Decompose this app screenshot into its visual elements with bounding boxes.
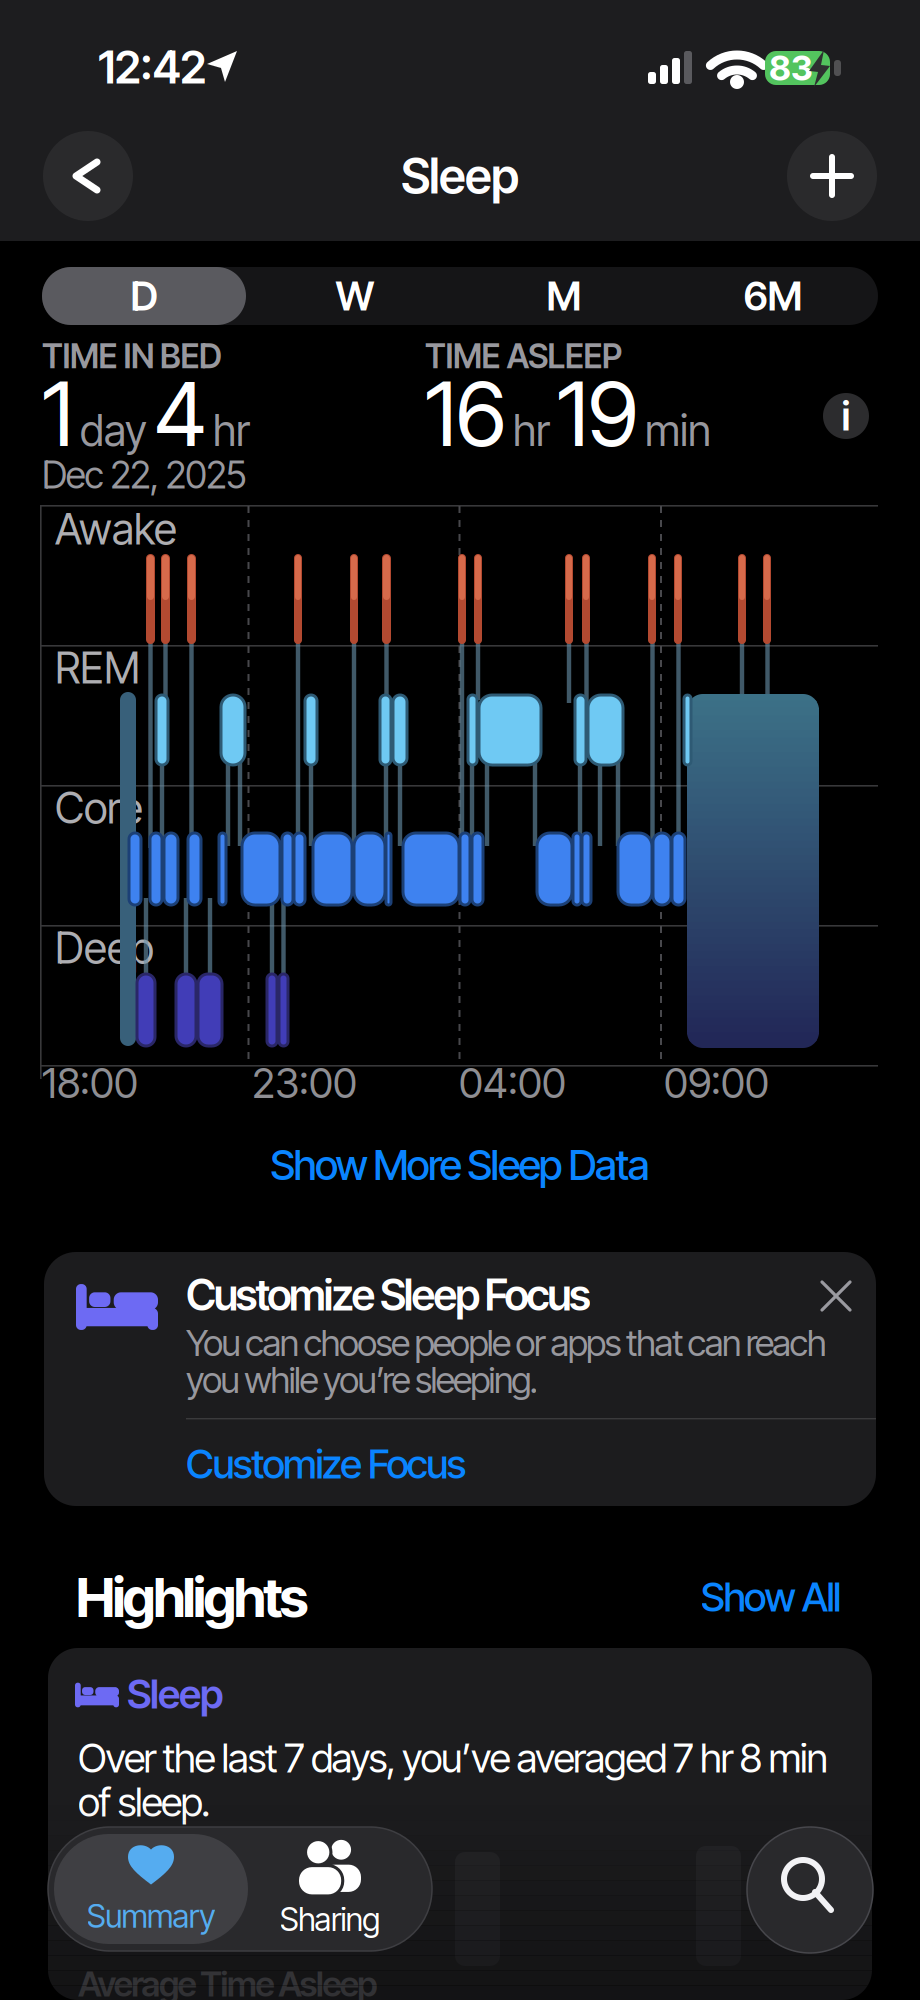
staticText: 12:42: [98, 40, 206, 94]
button[interactable]: Show More Sleep Data: [270, 1141, 650, 1189]
staticText: you while you’re sleeping.: [186, 1359, 538, 1401]
button[interactable]: Back: [43, 131, 133, 221]
staticText: Sharing: [280, 1900, 380, 1938]
staticText: hr: [513, 405, 550, 456]
staticText: Customize Sleep Focus: [186, 1270, 591, 1320]
staticText: Highlights: [76, 1565, 309, 1629]
staticText: Deep: [55, 923, 154, 973]
button[interactable]: W: [255, 267, 455, 325]
staticText: 6M: [743, 272, 802, 320]
button[interactable]: D: [42, 267, 246, 325]
staticText: M: [546, 272, 581, 320]
staticText: W: [335, 272, 374, 320]
button[interactable]: Dismiss: [816, 1276, 856, 1316]
button[interactable]: M: [464, 267, 664, 325]
staticText: 09:00: [664, 1059, 769, 1107]
staticText: Show All: [701, 1573, 841, 1621]
staticText: i: [841, 392, 850, 440]
staticText: day: [80, 405, 147, 456]
staticText: 16: [425, 362, 506, 466]
button[interactable]: Show All: [0, 0, 920, 2000]
staticText: 83: [769, 48, 813, 88]
button[interactable]: Add Data: [787, 131, 877, 221]
staticText: Sleep: [401, 148, 519, 204]
staticText: of sleep.: [78, 1778, 210, 1826]
button[interactable]: Info: [823, 392, 869, 440]
staticText: D: [130, 272, 157, 320]
staticText: 1: [42, 362, 73, 466]
staticText: Core: [55, 783, 143, 833]
staticText: Customize Focus: [186, 1440, 467, 1488]
staticText: You can choose people or apps that can r…: [186, 1322, 827, 1364]
staticText: 18:00: [42, 1059, 138, 1107]
staticText: Dec 22, 2025: [42, 453, 247, 497]
button[interactable]: Search: [747, 1827, 873, 1953]
staticText: REM: [55, 643, 140, 693]
staticText: 4: [154, 362, 206, 466]
button[interactable]: 6M: [673, 267, 873, 325]
staticText: 19: [557, 362, 638, 466]
staticText: TIME IN BED: [42, 336, 222, 376]
button[interactable]: Sharing: [245, 1834, 415, 1944]
staticText: Awake: [55, 504, 177, 554]
staticText: TIME ASLEEP: [425, 336, 622, 376]
staticText: Average Time Asleep: [78, 1964, 377, 2000]
staticText: 23:00: [252, 1059, 357, 1107]
staticText: 04:00: [459, 1059, 566, 1107]
button[interactable]: Customize Focus: [0, 0, 920, 2000]
staticText: Show More Sleep Data: [270, 1141, 650, 1189]
staticText: min: [645, 405, 711, 456]
staticText: Over the last 7 days, you’ve averaged 7 …: [78, 1734, 828, 1782]
staticText: hr: [213, 405, 250, 456]
button[interactable]: Summary: [54, 1834, 248, 1944]
staticText: Sleep: [127, 1670, 223, 1718]
staticText: Summary: [87, 1897, 215, 1935]
button[interactable]: Sleep highlight: [48, 1648, 872, 2000]
